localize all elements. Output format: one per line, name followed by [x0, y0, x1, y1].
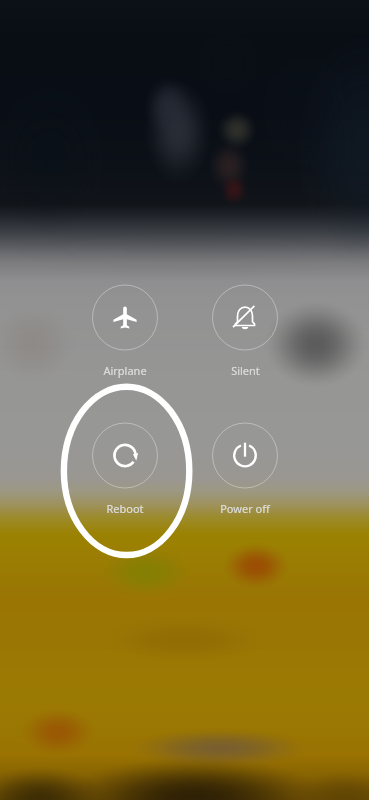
button[interactable]: Airplane — [75, 363, 175, 381]
staticText: Reboot — [106, 501, 144, 516]
button[interactable]: Power off — [195, 501, 295, 519]
staticText: Silent — [231, 363, 260, 378]
staticText: Airplane — [103, 363, 147, 378]
staticText: Power off — [220, 501, 270, 516]
button[interactable]: Silent — [195, 363, 295, 381]
button[interactable]: Reboot — [75, 501, 175, 519]
